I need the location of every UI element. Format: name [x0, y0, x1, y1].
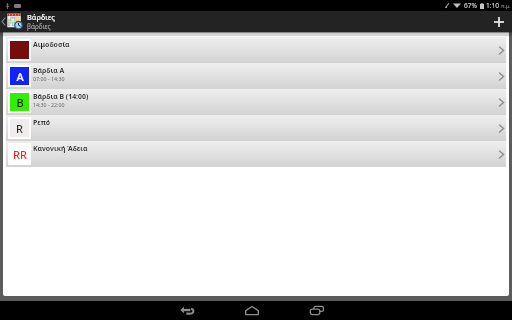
staticText: Βάρδια B (14:00)	[33, 92, 89, 101]
staticText: π.μ.	[501, 2, 511, 9]
button[interactable]: A	[6, 63, 506, 89]
button[interactable]: Add	[486, 11, 512, 32]
staticText: A	[16, 69, 24, 84]
button[interactable]: Navigate up	[0, 11, 7, 32]
button[interactable]: Αιμοδοσία	[6, 37, 506, 63]
staticText: Αιμοδοσία	[33, 40, 70, 49]
staticText: Κανονική Άδεια	[33, 144, 88, 153]
staticText: RR	[13, 147, 27, 162]
staticText: βάρδιες	[27, 22, 51, 31]
button[interactable]: Recent apps	[285, 301, 349, 320]
staticText: Ρεπό	[33, 118, 51, 127]
button[interactable]: B	[6, 89, 506, 115]
staticText: R	[16, 121, 23, 136]
staticText: 67%	[464, 1, 478, 10]
button[interactable]: R	[6, 115, 506, 141]
staticText: 1:10	[486, 1, 500, 10]
staticText: 14:30 - 22:00	[33, 101, 65, 108]
button[interactable]: RR	[6, 141, 506, 167]
staticText: B	[16, 95, 24, 110]
staticText: Βάρδια A	[33, 66, 65, 75]
staticText: 07:00 - 14:30	[33, 75, 65, 82]
button[interactable]: Back	[155, 301, 219, 320]
staticText: Βάρδιες	[27, 12, 55, 22]
button[interactable]: Home	[220, 301, 284, 320]
